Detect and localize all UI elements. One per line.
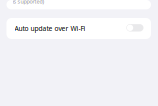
button[interactable]: Auto update over Wi-Fi, off (126, 24, 143, 33)
staticText: is supported) (12, 0, 44, 5)
staticText: Auto update over Wi-Fi (14, 24, 85, 33)
button[interactable]: Auto update over Wi-Fi (6, 18, 151, 39)
